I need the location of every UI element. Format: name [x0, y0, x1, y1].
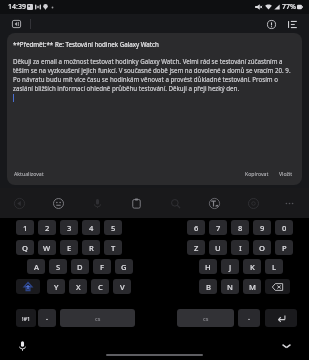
button[interactable]: R — [82, 240, 100, 255]
button[interactable]: cs — [177, 309, 234, 327]
staticText: X — [76, 282, 81, 292]
staticText: I — [239, 243, 242, 253]
staticText: P — [282, 243, 287, 253]
staticText: 7 — [216, 223, 221, 233]
button[interactable]: Hide keyboard — [8, 16, 24, 32]
button[interactable]: B — [199, 279, 217, 294]
staticText: W — [43, 243, 51, 253]
staticText: Děkuji za email a možnost testovat hodin… — [13, 57, 294, 93]
button[interactable]: Backspace — [265, 279, 290, 294]
staticText: A — [34, 262, 39, 272]
staticText: Aktualizovat — [14, 170, 44, 177]
staticText: Vložit — [279, 170, 293, 177]
button[interactable]: Translate — [205, 194, 223, 212]
button[interactable]: U — [209, 240, 227, 255]
staticText: F — [100, 262, 105, 272]
button[interactable]: Aktualizovat — [12, 168, 46, 179]
staticText: E — [67, 243, 72, 253]
button[interactable]: O — [253, 240, 271, 255]
button[interactable]: Search — [166, 194, 184, 212]
button[interactable]: C — [91, 279, 109, 294]
button[interactable]: P — [275, 240, 293, 255]
staticText: 14:39 — [8, 2, 26, 12]
button[interactable]: N — [221, 279, 239, 294]
button[interactable]: Shift — [16, 279, 40, 294]
staticText: 8 — [238, 223, 243, 233]
staticText: H — [205, 262, 211, 272]
staticText: O — [259, 243, 265, 253]
staticText: Kopírovat — [245, 170, 269, 177]
staticText: K — [250, 262, 255, 272]
button[interactable]: 0 — [275, 220, 293, 235]
staticText: N — [227, 282, 233, 292]
button[interactable]: 5 — [104, 220, 122, 235]
button[interactable]: S — [49, 259, 67, 274]
staticText: L — [272, 262, 277, 272]
staticText: 77% — [282, 2, 296, 12]
button[interactable]: 1 — [16, 220, 34, 235]
button[interactable]: Emoji — [49, 194, 67, 212]
button[interactable]: 6 — [187, 220, 205, 235]
button[interactable]: !#1 — [16, 309, 36, 327]
staticText: 5 — [111, 223, 116, 233]
staticText: cs — [203, 315, 209, 322]
staticText: D — [77, 262, 83, 272]
staticText: G — [121, 262, 127, 272]
button[interactable]: G — [115, 259, 133, 274]
button[interactable]: 3 — [60, 220, 78, 235]
button[interactable]: V — [113, 279, 131, 294]
button[interactable]: Info — [263, 16, 279, 32]
button[interactable]: Enter — [265, 309, 297, 327]
button[interactable]: J — [221, 259, 239, 274]
staticText: 6 — [194, 223, 199, 233]
button[interactable]: Clipboard — [127, 194, 145, 212]
staticText: U — [215, 243, 221, 253]
button[interactable]: Format list — [284, 16, 300, 32]
staticText: cs — [95, 315, 101, 322]
button[interactable]: A — [27, 259, 45, 274]
button[interactable]: Y — [47, 279, 65, 294]
staticText: 4 — [89, 223, 94, 233]
staticText: 3 — [67, 223, 72, 233]
button[interactable]: M — [243, 279, 261, 294]
button[interactable]: X — [69, 279, 87, 294]
button[interactable]: 2 — [38, 220, 56, 235]
staticText: Y — [54, 282, 59, 292]
button[interactable]: Expand — [10, 194, 28, 212]
button[interactable]: Settings — [244, 194, 262, 212]
button[interactable]: I — [231, 240, 249, 255]
button[interactable]: Z — [187, 240, 205, 255]
button[interactable]: Hide keyboard — [278, 338, 294, 354]
button[interactable]: E — [60, 240, 78, 255]
button[interactable]: 4 — [82, 220, 100, 235]
button[interactable]: W — [38, 240, 56, 255]
button[interactable] — [238, 309, 260, 327]
button[interactable]: Q — [16, 240, 34, 255]
button[interactable]: 7 — [209, 220, 227, 235]
button[interactable]: Vložit — [277, 168, 295, 179]
button[interactable]: F — [93, 259, 111, 274]
staticText: **Předmět:** Re: Testování hodinek Galax… — [13, 40, 159, 48]
button[interactable]: Voice input — [14, 338, 30, 354]
button[interactable]: Kopírovat — [243, 168, 271, 179]
button[interactable]: More options — [280, 194, 298, 212]
button[interactable] — [38, 309, 56, 327]
button[interactable]: 9 — [253, 220, 271, 235]
staticText: M — [249, 282, 256, 292]
staticText: T — [111, 243, 116, 253]
button[interactable]: D — [71, 259, 89, 274]
button[interactable]: L — [265, 259, 283, 274]
button[interactable]: K — [243, 259, 261, 274]
staticText: 9 — [260, 223, 265, 233]
button[interactable]: 8 — [231, 220, 249, 235]
staticText: J — [229, 262, 232, 272]
button[interactable]: H — [199, 259, 217, 274]
staticText: B — [206, 282, 211, 292]
button[interactable]: cs — [60, 309, 135, 327]
staticText: V — [120, 282, 125, 292]
button[interactable]: T — [104, 240, 122, 255]
staticText: S — [56, 262, 61, 272]
staticText: !#1 — [22, 315, 31, 322]
button[interactable]: Voice input — [88, 194, 106, 212]
staticText: 2 — [45, 223, 50, 233]
